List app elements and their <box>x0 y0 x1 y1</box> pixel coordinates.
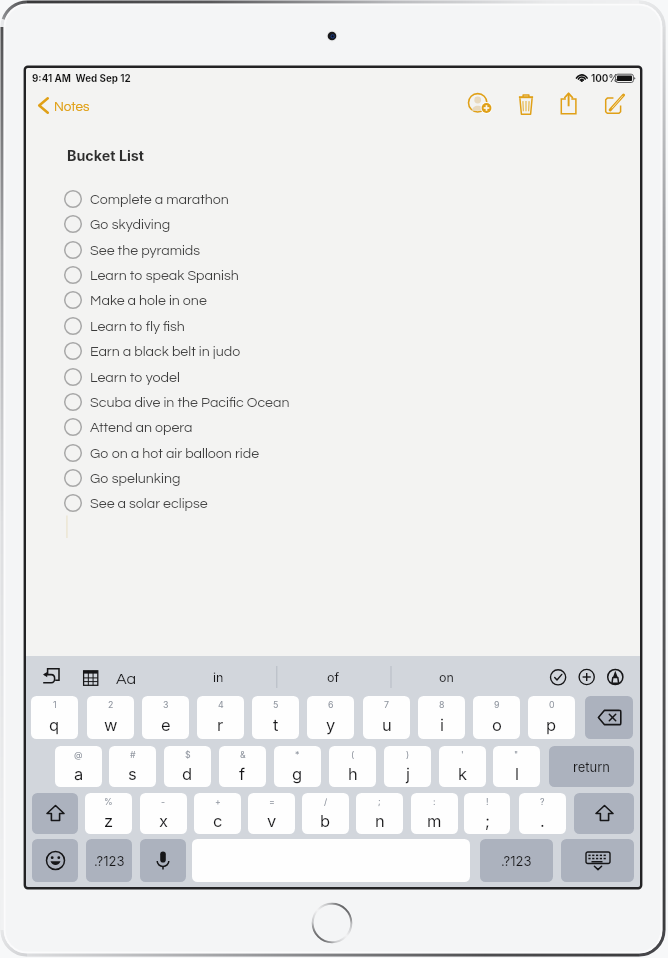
staticText: g <box>292 764 303 784</box>
staticText: ' <box>461 749 464 760</box>
staticText: in <box>213 670 224 685</box>
button[interactable]: Aa <box>111 661 141 693</box>
button[interactable]: Learn to fly fish <box>64 315 185 337</box>
staticText: Bucket List <box>67 147 145 164</box>
button[interactable]: on <box>411 656 481 698</box>
staticText: q <box>49 715 60 735</box>
staticText: of <box>327 670 340 685</box>
button[interactable]: Scuba dive in the Pacific Ocean <box>64 391 290 413</box>
button[interactable]: - <box>140 793 187 834</box>
staticText: i <box>440 715 444 735</box>
staticText: See the pyramids <box>90 243 201 258</box>
staticText: y <box>326 715 336 735</box>
staticText: 8 <box>439 699 445 710</box>
staticText: See a solar eclipse <box>90 496 208 511</box>
staticText: Earn a black belt in judo <box>90 344 241 359</box>
staticText: u <box>382 715 392 735</box>
button[interactable]: See the pyramids <box>64 239 201 261</box>
button[interactable]: Go on a hot air balloon ride <box>64 442 260 464</box>
staticText: a <box>74 764 84 784</box>
button[interactable]: Make a hole in one <box>64 289 207 311</box>
button[interactable]: of <box>298 656 368 698</box>
button[interactable]: ( <box>329 746 376 787</box>
button[interactable]: # <box>109 746 156 787</box>
button[interactable]: 7 <box>363 696 410 739</box>
button[interactable]: New note <box>597 89 629 122</box>
button[interactable]: 4 <box>197 696 244 739</box>
button[interactable]: Delete <box>510 89 542 122</box>
button[interactable]: 8 <box>418 696 465 739</box>
button[interactable]: ) <box>384 746 431 787</box>
button[interactable]: Insert table <box>75 661 105 691</box>
staticText: w <box>104 715 118 735</box>
button[interactable]: Add people <box>462 89 494 122</box>
staticText: 1 <box>53 699 57 710</box>
button[interactable]: Backspace <box>585 696 633 739</box>
button[interactable]: Shift <box>574 793 634 834</box>
button[interactable]: Emoji <box>32 839 78 882</box>
button[interactable]: in <box>183 656 253 698</box>
staticText: = <box>269 796 275 807</box>
button[interactable]: Share <box>553 89 585 122</box>
staticText: . <box>540 811 545 831</box>
button[interactable]: Dictate <box>140 839 186 882</box>
button[interactable]: Complete a marathon <box>64 188 229 210</box>
staticText: % <box>104 796 113 807</box>
staticText: & <box>240 749 246 760</box>
button[interactable]: ? <box>519 793 566 834</box>
staticText: 2 <box>108 699 114 710</box>
button[interactable]: return <box>549 746 634 787</box>
button[interactable]: Undo <box>38 661 68 691</box>
staticText: z <box>104 811 114 831</box>
button[interactable]: % <box>85 793 132 834</box>
staticText: r <box>217 715 224 735</box>
staticText: p <box>546 715 557 735</box>
button[interactable]: 3 <box>142 696 189 739</box>
button[interactable]: 9 <box>473 696 520 739</box>
button[interactable]: & <box>219 746 266 787</box>
staticText: ) <box>406 749 410 760</box>
button[interactable]: = <box>248 793 295 834</box>
staticText: : <box>433 796 436 807</box>
staticText: Notes <box>54 100 90 114</box>
staticText: @ <box>74 749 83 760</box>
button[interactable]: Notes <box>38 93 90 118</box>
button[interactable]: ; <box>356 793 403 834</box>
staticText: j <box>406 764 410 784</box>
button[interactable]: 0 <box>528 696 575 739</box>
button[interactable]: Hide keyboard <box>561 839 634 882</box>
button[interactable]: $ <box>164 746 211 787</box>
button[interactable]: " <box>493 746 540 787</box>
button[interactable]: Go skydiving <box>64 213 171 235</box>
button[interactable]: Learn to yodel <box>64 366 180 388</box>
button[interactable]: .?123 <box>480 839 553 882</box>
button[interactable]: @ <box>55 746 102 787</box>
button[interactable]: 2 <box>87 696 134 739</box>
staticText: 9 <box>494 699 500 710</box>
button[interactable]: Shift <box>32 793 78 834</box>
staticText: Go skydiving <box>90 217 171 232</box>
staticText: # <box>130 749 136 760</box>
button[interactable]: Go spelunking <box>64 467 181 489</box>
button[interactable]: : <box>411 793 458 834</box>
button[interactable]: Earn a black belt in judo <box>64 340 241 362</box>
button[interactable]: See a solar eclipse <box>64 492 208 514</box>
button[interactable]: 1 <box>31 696 78 739</box>
button[interactable]: Checklist <box>544 661 574 691</box>
staticText: s <box>128 764 137 784</box>
button[interactable]: / <box>302 793 349 834</box>
button[interactable]: * <box>274 746 321 787</box>
button[interactable]: .?123 <box>86 839 132 882</box>
button[interactable]: ' <box>439 746 486 787</box>
button[interactable]: Insert <box>571 661 601 691</box>
button[interactable]: Learn to speak Spanish <box>64 264 239 286</box>
button[interactable]: + <box>194 793 241 834</box>
button[interactable]: 6 <box>307 696 354 739</box>
button[interactable]: Attend an opera <box>64 416 193 438</box>
button[interactable]: 5 <box>252 696 299 739</box>
staticText: Learn to yodel <box>90 370 180 385</box>
button[interactable]: ! <box>464 793 510 834</box>
staticText: m <box>427 811 442 831</box>
button[interactable]: Markup <box>599 661 629 691</box>
